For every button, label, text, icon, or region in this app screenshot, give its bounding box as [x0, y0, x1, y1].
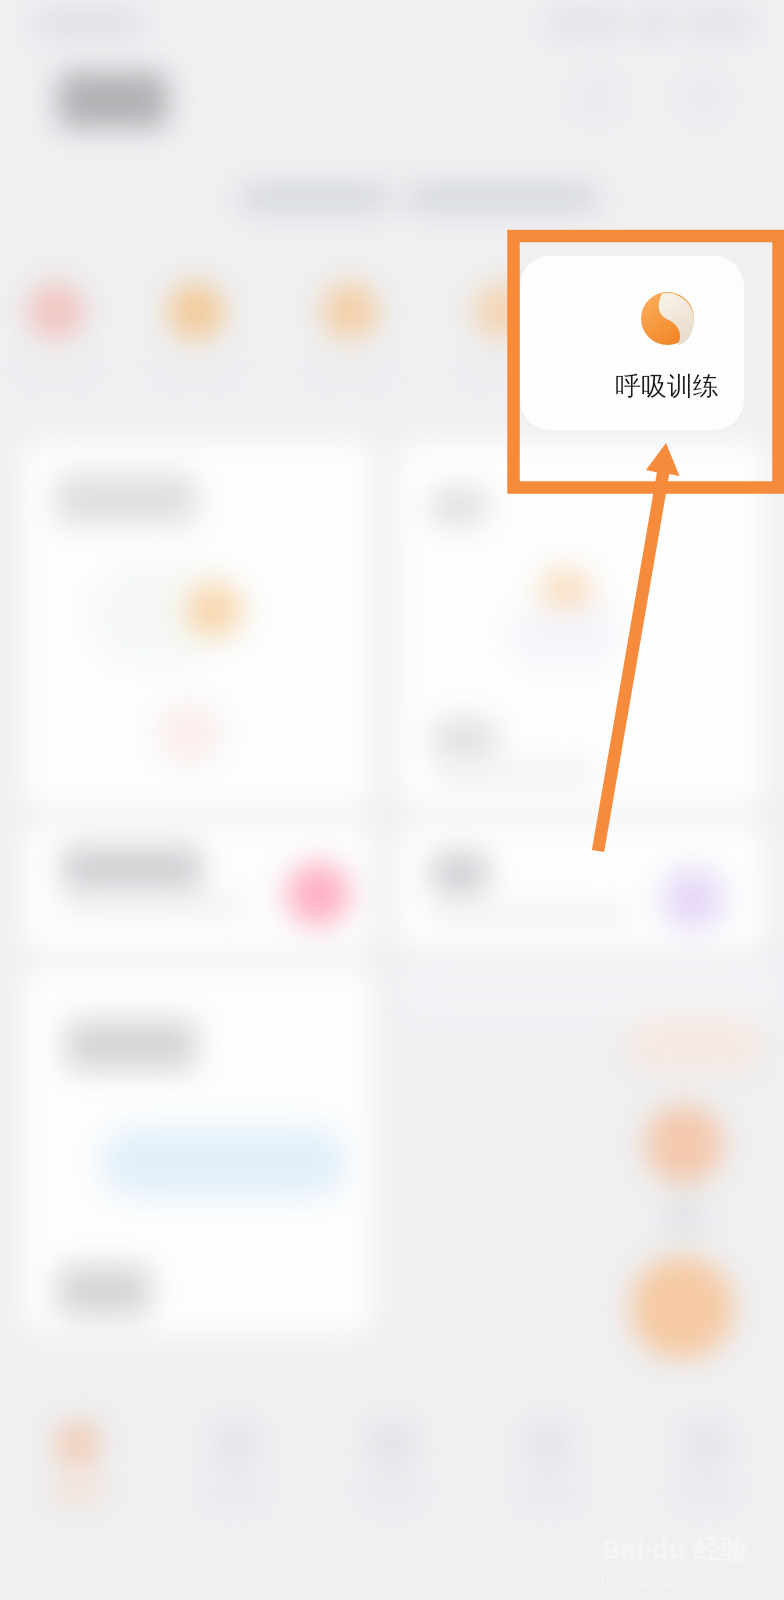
button[interactable]: 呼吸训练	[597, 268, 737, 418]
button[interactable]	[290, 282, 410, 400]
button[interactable]	[0, 1404, 156, 1540]
button[interactable]	[136, 282, 256, 400]
button[interactable]: Add	[630, 1256, 734, 1360]
button[interactable]	[22, 822, 374, 952]
button[interactable]	[398, 440, 766, 808]
button[interactable]	[22, 966, 374, 1334]
button[interactable]	[22, 440, 374, 808]
button[interactable]	[596, 282, 716, 400]
button[interactable]	[398, 822, 766, 952]
button[interactable]: Assistant	[644, 1104, 724, 1184]
button[interactable]	[0, 282, 116, 400]
staticText: 呼吸训练	[615, 370, 719, 403]
button[interactable]	[442, 282, 562, 400]
